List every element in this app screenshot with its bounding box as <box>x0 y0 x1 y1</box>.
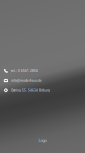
staticText: info@musterhaus.de <box>11 79 42 83</box>
button[interactable]: E-mail <box>0 76 85 85</box>
button[interactable]: Call <box>0 66 85 76</box>
button[interactable]: Directions <box>0 85 85 95</box>
staticText: Logo <box>38 138 46 143</box>
staticText: tel.: 0 6561 2804 <box>11 69 38 73</box>
staticText: Ostring 55, 54634 Bitburg <box>11 88 50 92</box>
